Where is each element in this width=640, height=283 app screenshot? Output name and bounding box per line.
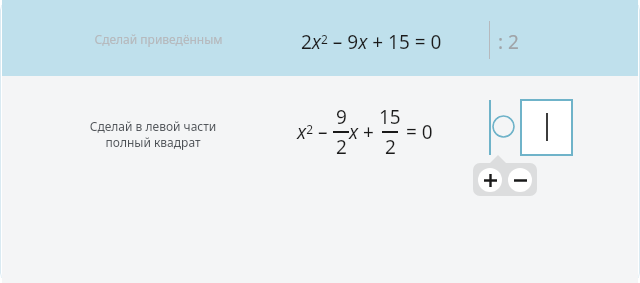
staticText: 15 xyxy=(379,104,401,130)
staticText: x2 – xyxy=(297,119,333,145)
staticText: : 2 xyxy=(498,29,519,55)
staticText: 2x2 – 9x + 15 = 0 xyxy=(301,29,442,55)
button[interactable]: Минус xyxy=(508,168,532,192)
staticText: 9 xyxy=(336,104,347,130)
button[interactable]: Плюс xyxy=(478,168,502,192)
button[interactable]: Поле ввода xyxy=(520,99,573,156)
staticText: x + xyxy=(349,119,379,145)
staticText: 2 xyxy=(385,134,396,160)
staticText: 2 xyxy=(336,134,347,160)
button[interactable]: Выбрать операцию xyxy=(492,115,515,138)
staticText: Сделай приведённым xyxy=(94,31,223,47)
staticText: Сделай в левой части полный квадрат xyxy=(78,118,228,283)
staticText: = 0 xyxy=(401,119,433,145)
